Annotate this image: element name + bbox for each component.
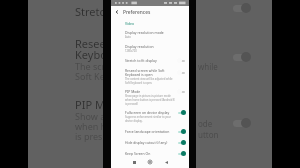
staticText: Display resolution (125, 44, 154, 49)
staticText: 1280x720 (125, 49, 137, 53)
staticText: utton (198, 129, 219, 140)
staticText: device display. (125, 119, 143, 123)
button[interactable]: Fullscreen on device display (111, 110, 189, 123)
staticText: Show page in picture-in-picture mode (125, 94, 171, 98)
staticText: Preferences (123, 9, 151, 16)
staticText: Display resolution mode (125, 30, 164, 35)
button[interactable]: Recent apps (127, 156, 141, 168)
staticText: Force landscape orientation (125, 129, 170, 134)
staticText: Hide display cutout (if any) (125, 140, 168, 145)
staticText: Keep Screen On (125, 151, 151, 156)
staticText: Reseed screen while Soft Keyboard is ope… (125, 68, 165, 77)
button[interactable]: Navigate up (111, 6, 189, 18)
staticText: PIP Mode (75, 97, 103, 112)
button[interactable]: Home (143, 156, 157, 168)
staticText: Stretch to fit display (75, 4, 103, 19)
button[interactable]: Hide display cutout (if any) (111, 140, 189, 145)
staticText: Fullscreen on device display (125, 110, 170, 115)
button[interactable]: PIP Mode (111, 89, 189, 106)
staticText: Reseed screen while Soft Keyboard is ope… (75, 36, 103, 62)
staticText: Video (125, 21, 135, 26)
staticText: Stretch to fit display (125, 58, 157, 63)
button[interactable]: Stretch to fit display (111, 58, 189, 63)
button[interactable]: Display resolution (111, 44, 189, 53)
staticText: Auto (125, 35, 131, 39)
button[interactable]: Back (159, 156, 173, 168)
staticText: Show a picture-in-picture mode when home… (75, 110, 103, 142)
staticText: while (198, 61, 218, 72)
staticText: PIP Mode (125, 89, 141, 94)
button[interactable]: Force landscape orientation (111, 129, 189, 134)
button[interactable]: Display resolution mode (111, 30, 189, 39)
staticText: Soft Keyboard is open. (125, 81, 153, 85)
staticText: The screen view will be adjusted while S… (75, 60, 103, 82)
staticText: Suppress enforcement similar to your (125, 115, 171, 119)
staticText: ode (198, 118, 213, 129)
button[interactable]: Reseed screen while Soft Keyboard is ope… (111, 68, 189, 85)
button[interactable]: Keep Screen On (111, 151, 189, 156)
staticText: The content view will be adjusted while (125, 77, 173, 81)
staticText: when home button is pressed (Android 8 (125, 98, 175, 102)
staticText: is pressed) (125, 102, 138, 106)
